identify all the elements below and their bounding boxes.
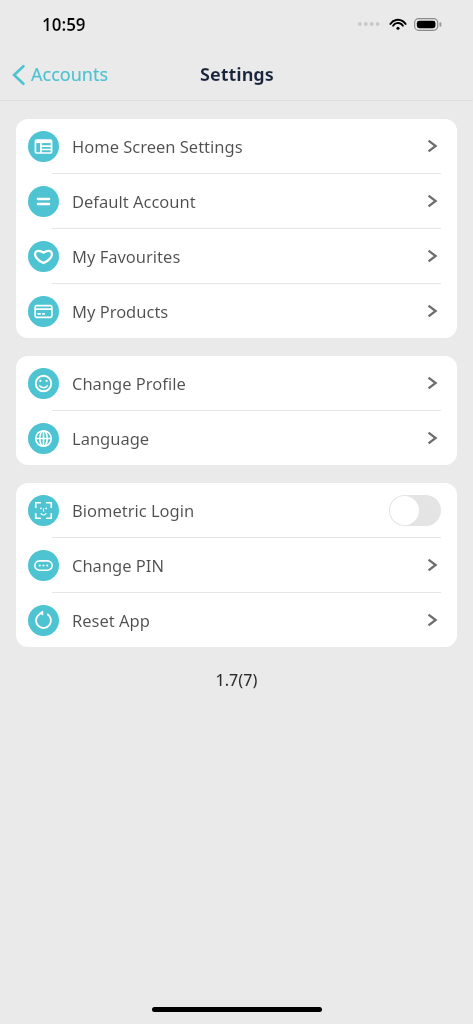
button[interactable]: Accounts [0, 56, 119, 93]
button[interactable]: Biometric Login [16, 483, 457, 537]
staticText: Reset App [72, 609, 150, 631]
button[interactable]: Reset App [16, 593, 457, 647]
button[interactable]: Biometric Login toggle, off [389, 495, 441, 526]
staticText: Biometric Login [72, 499, 195, 521]
button[interactable]: Change PIN [16, 538, 457, 592]
staticText: 1.7(7) [0, 669, 473, 691]
staticText: Language [72, 427, 150, 449]
staticText: Change PIN [72, 554, 164, 576]
staticText: Accounts [31, 62, 109, 87]
button[interactable]: Default Account [16, 174, 457, 228]
staticText: Change Profile [72, 372, 186, 394]
staticText: 10:59 [42, 13, 86, 36]
staticText: Default Account [72, 190, 196, 212]
button[interactable]: My Favourites [16, 229, 457, 283]
staticText: My Favourites [72, 245, 181, 267]
button[interactable]: Language [16, 411, 457, 465]
staticText: Home Screen Settings [72, 135, 243, 157]
button[interactable]: Change Profile [16, 356, 457, 410]
button[interactable]: My Products [16, 284, 457, 338]
staticText: Settings [200, 62, 274, 87]
staticText: My Products [72, 300, 169, 322]
button[interactable]: Home Screen Settings [16, 119, 457, 173]
